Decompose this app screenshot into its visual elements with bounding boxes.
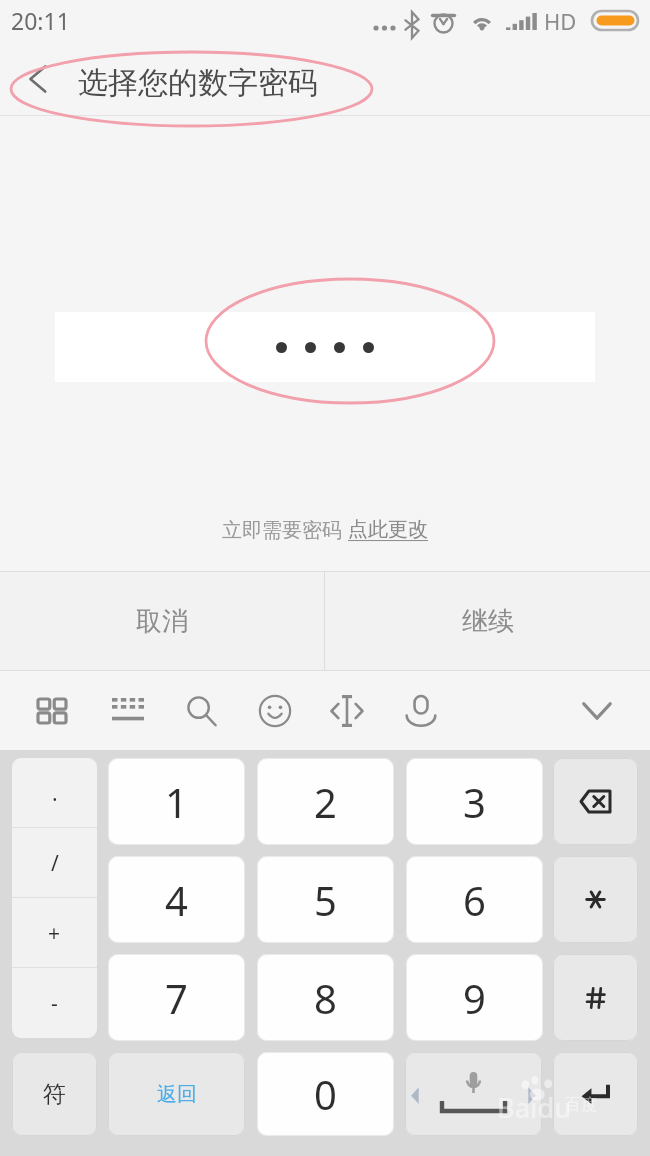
button[interactable]: 5: [257, 856, 394, 943]
staticText: 取消: [136, 605, 188, 638]
staticText: 3: [463, 775, 486, 829]
staticText: 2: [314, 775, 337, 829]
button[interactable]: Hash: [553, 954, 638, 1041]
button[interactable]: Back: [8, 50, 68, 115]
button[interactable]: 8: [257, 954, 394, 1041]
button[interactable]: -: [12, 968, 97, 1038]
staticText: 20:11: [11, 5, 70, 36]
button[interactable]: Enter: [553, 1052, 638, 1136]
button[interactable]: /: [12, 828, 97, 898]
staticText: 选择您的数字密码: [78, 64, 318, 102]
staticText: 6: [463, 873, 486, 927]
button[interactable]: 0: [257, 1052, 394, 1136]
button[interactable]: 9: [406, 954, 543, 1041]
button[interactable]: 7: [108, 954, 245, 1041]
button[interactable]: 点此更改: [348, 517, 428, 542]
staticText: 返回: [157, 1082, 197, 1107]
staticText: 百度: [565, 1095, 597, 1115]
button[interactable]: .: [12, 758, 97, 828]
staticText: 8: [314, 971, 337, 1025]
button[interactable]: Backspace: [553, 758, 638, 845]
button[interactable]: 取消: [0, 572, 324, 670]
button[interactable]: Apps: [26, 671, 78, 750]
staticText: -: [51, 989, 58, 1018]
button[interactable]: Asterisk: [553, 856, 638, 943]
staticText: 5: [314, 873, 337, 927]
staticText: 符: [43, 1080, 66, 1109]
button[interactable]: 3: [406, 758, 543, 845]
button[interactable]: 6: [406, 856, 543, 943]
button[interactable]: Edit cursor: [321, 671, 373, 750]
staticText: 继续: [462, 605, 514, 638]
button[interactable]: 继续: [325, 572, 650, 670]
button[interactable]: +: [12, 898, 97, 968]
staticText: 0: [314, 1067, 337, 1121]
staticText: 立即需要密码: [222, 516, 348, 543]
button[interactable]: Search: [176, 671, 228, 750]
button[interactable]: Hide keyboard: [571, 671, 623, 750]
button[interactable]: 2: [257, 758, 394, 845]
button[interactable]: 返回: [108, 1052, 245, 1136]
button[interactable]: 4: [108, 856, 245, 943]
button[interactable]: Emoji: [249, 671, 301, 750]
button[interactable]: [55, 312, 595, 382]
staticText: 1: [165, 775, 188, 829]
staticText: HD: [544, 6, 577, 36]
button[interactable]: 1: [108, 758, 245, 845]
staticText: /: [51, 849, 59, 878]
staticText: +: [48, 919, 61, 948]
staticText: 4: [165, 873, 188, 927]
staticText: 9: [463, 971, 486, 1025]
button[interactable]: Space: [405, 1052, 542, 1136]
button[interactable]: Keyboard: [102, 671, 154, 750]
button[interactable]: Voice input: [395, 671, 447, 750]
button[interactable]: 符: [12, 1052, 97, 1136]
staticText: .: [52, 779, 58, 808]
staticText: Baidu: [497, 1089, 572, 1126]
staticText: 7: [165, 971, 188, 1025]
